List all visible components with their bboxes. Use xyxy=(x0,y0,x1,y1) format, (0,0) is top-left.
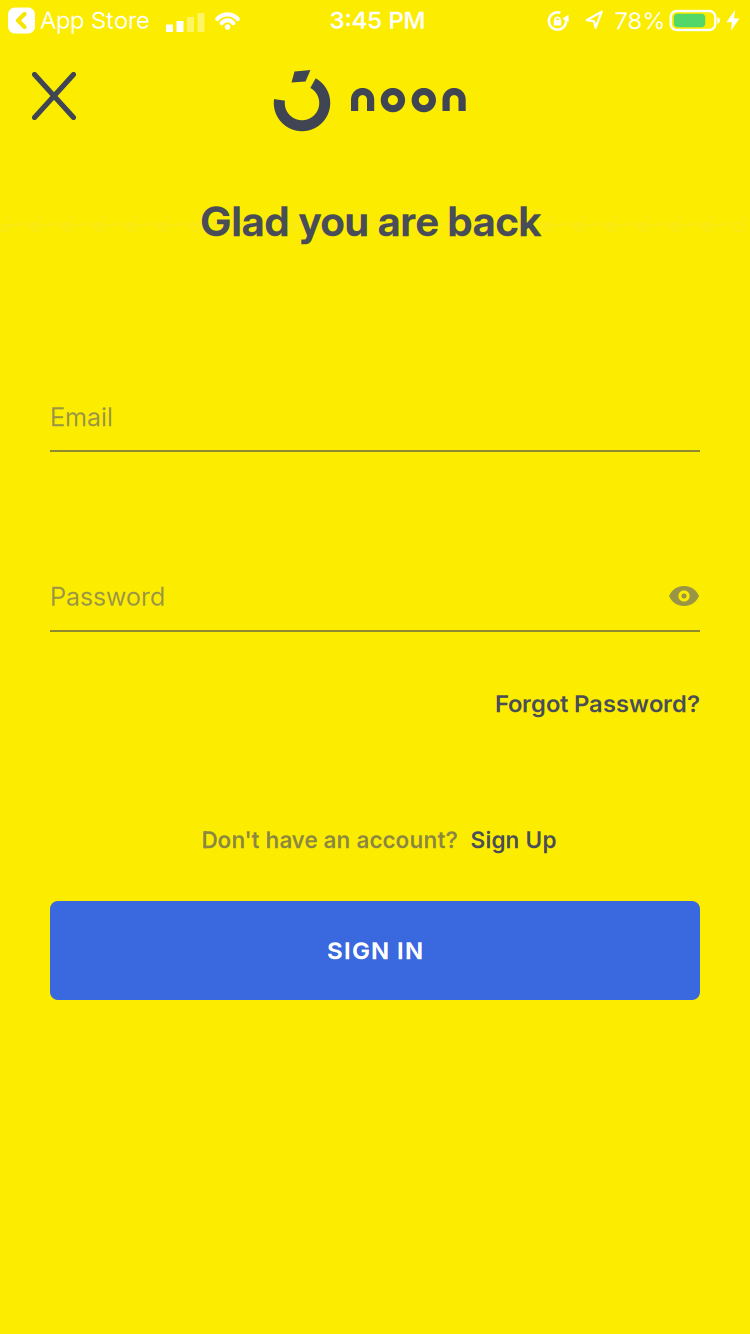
staticText: Forgot Password? xyxy=(495,689,700,718)
button[interactable]: Close xyxy=(23,63,84,128)
staticText: 78% xyxy=(614,6,665,35)
staticText: SIGN IN xyxy=(327,936,423,965)
button[interactable]: SIGN IN xyxy=(50,901,700,1000)
button[interactable]: Forgot Password? xyxy=(495,689,700,718)
staticText: Password xyxy=(50,582,165,611)
staticText: Don't have an account? xyxy=(201,827,457,853)
button[interactable]: Show password xyxy=(662,578,706,614)
staticText: App Store xyxy=(40,6,150,34)
staticText: Glad you are back xyxy=(200,196,541,246)
staticText: 3:45 PM xyxy=(329,6,425,34)
button[interactable]: Sign Up xyxy=(470,827,556,853)
staticText: Email xyxy=(50,402,113,432)
staticText: Sign Up xyxy=(470,827,556,853)
